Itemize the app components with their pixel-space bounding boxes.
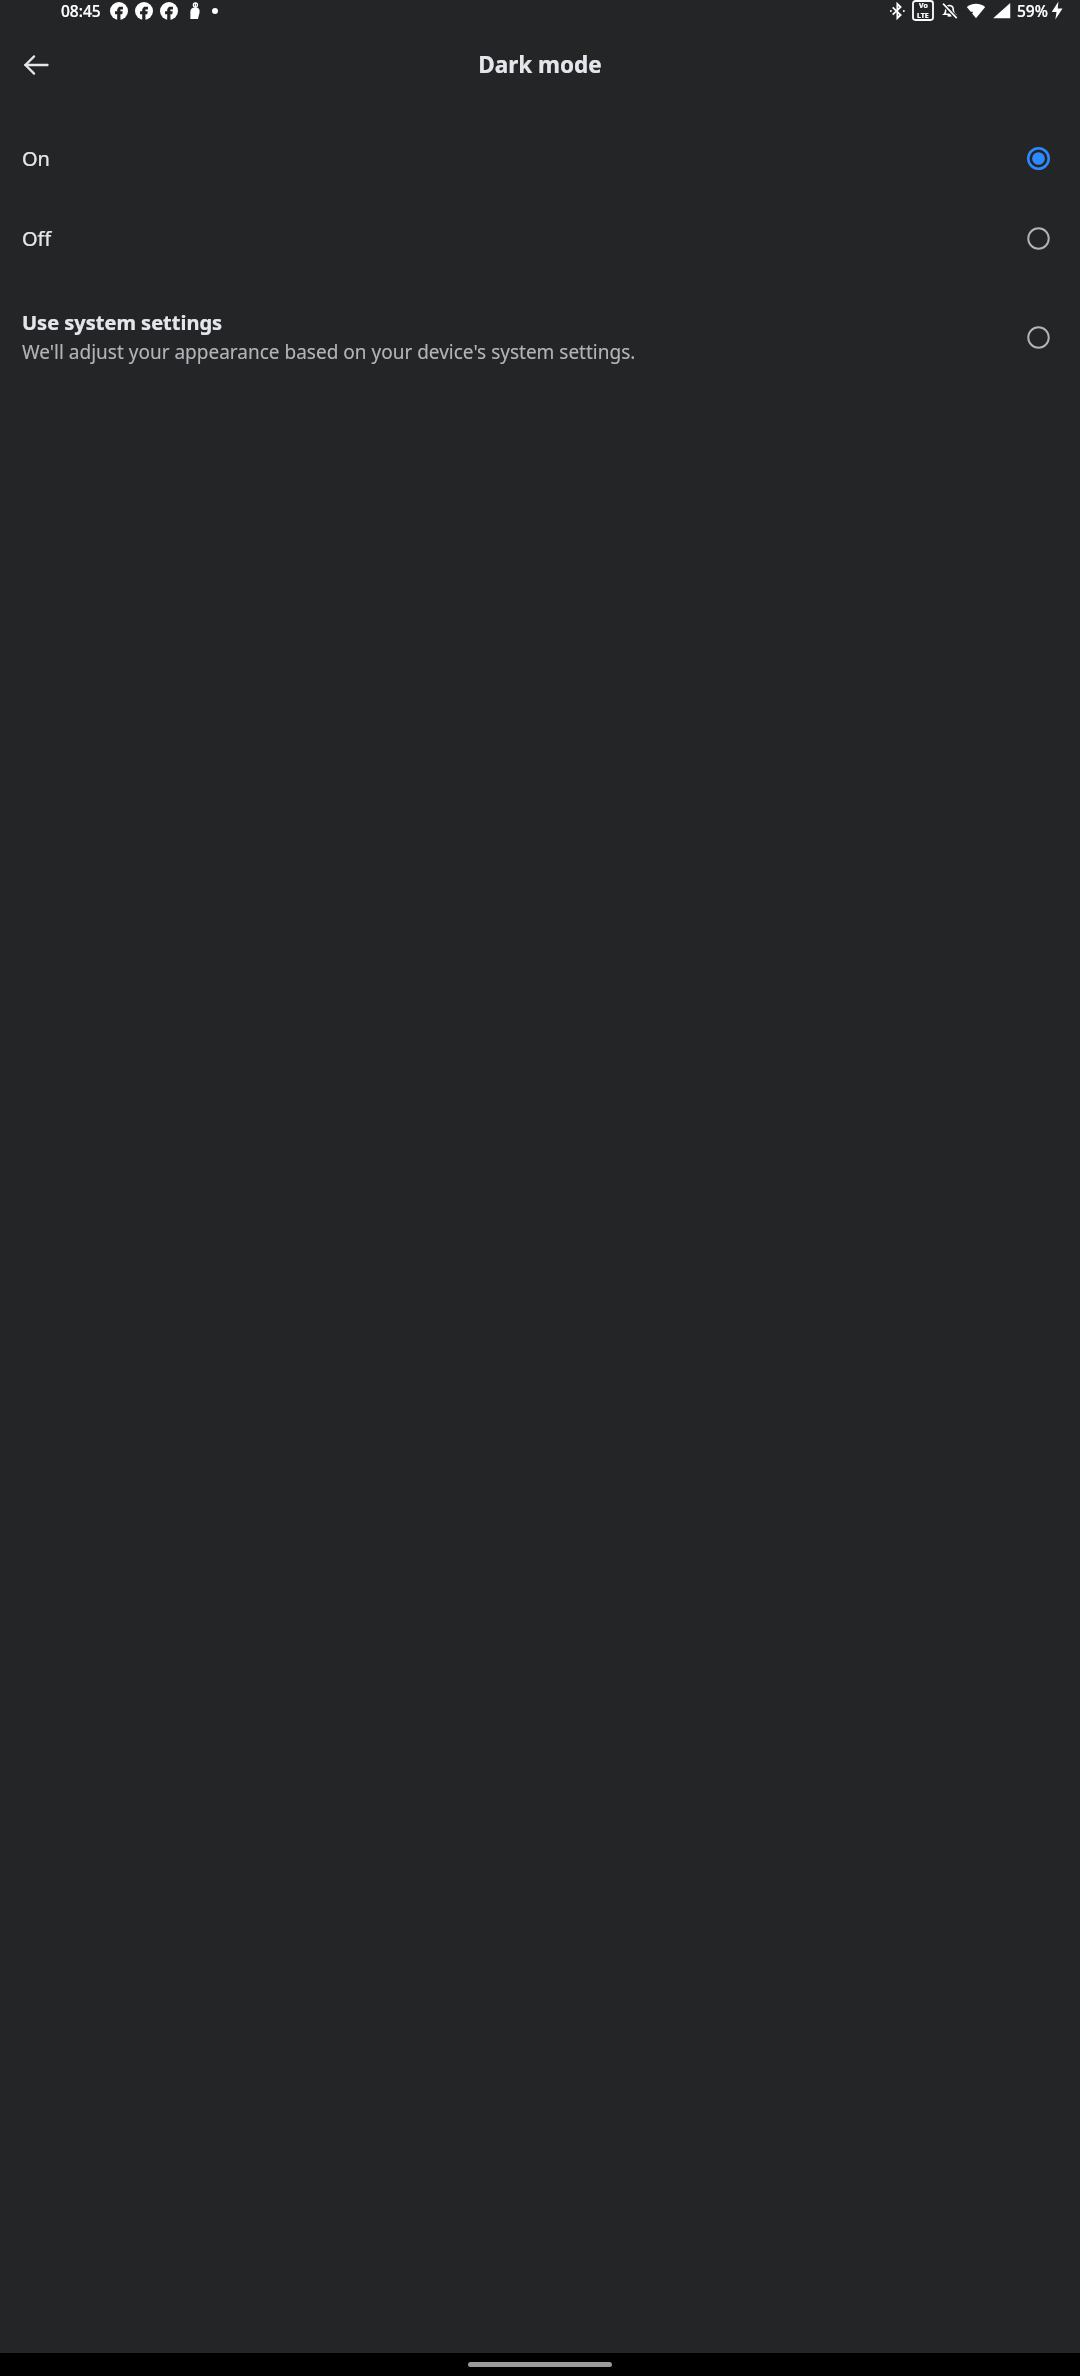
staticText: We'll adjust your appearance based on yo… bbox=[22, 339, 636, 365]
staticText: Use system settings bbox=[22, 309, 223, 336]
staticText: On bbox=[22, 145, 50, 172]
staticText: Dark mode bbox=[478, 49, 602, 80]
staticText: Vo bbox=[919, 1, 928, 11]
staticText: 08:45 bbox=[61, 0, 101, 21]
button[interactable]: Off bbox=[0, 198, 1080, 278]
button[interactable]: Use system settings bbox=[0, 278, 1080, 396]
button[interactable]: Back bbox=[8, 37, 64, 93]
staticText: Off bbox=[22, 225, 52, 252]
button[interactable]: On bbox=[0, 118, 1080, 198]
staticText: LTE bbox=[917, 11, 929, 20]
staticText: 59% bbox=[1017, 0, 1048, 21]
